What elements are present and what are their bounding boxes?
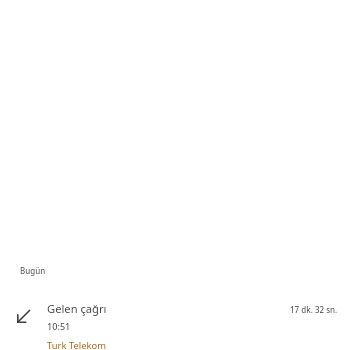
staticText: Gelen çağrı (47, 301, 107, 316)
staticText: 10:51 (47, 320, 71, 332)
staticText: Turk Telekom (47, 339, 106, 350)
button[interactable]: Gelen çağrı (0, 288, 350, 350)
other: Gelen çağrı (17, 310, 30, 323)
staticText: 17 dk. 32 sn. (290, 304, 338, 315)
staticText: Bugün (20, 265, 46, 276)
